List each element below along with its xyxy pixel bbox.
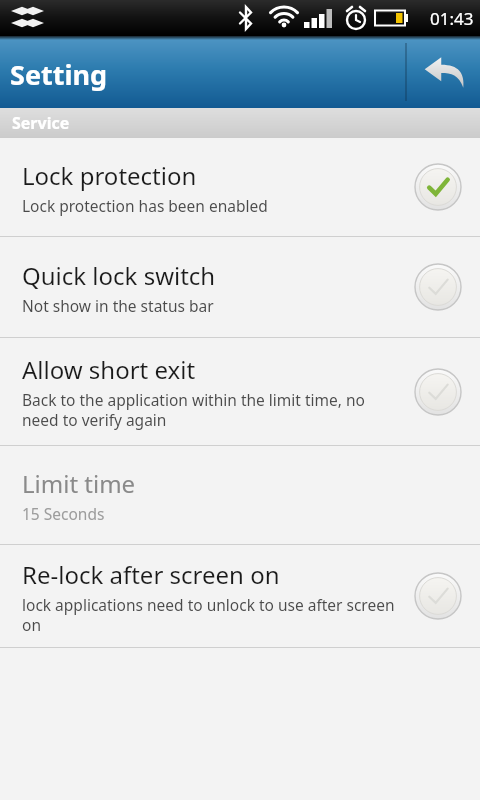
staticText: 15 Seconds	[22, 503, 105, 524]
staticText: Service	[12, 112, 70, 134]
button[interactable]: Back	[407, 36, 480, 108]
staticText: Re-lock after screen on	[22, 558, 280, 591]
button[interactable]: Quick lock switch	[0, 237, 480, 337]
staticText: Limit time	[22, 467, 136, 500]
button[interactable]: Enabled	[415, 164, 461, 210]
button[interactable]: Limit time	[0, 446, 480, 544]
staticText: Quick lock switch	[22, 259, 216, 292]
button[interactable]: Re-lock after screen on	[0, 545, 480, 647]
staticText: Lock protection has been enabled	[22, 195, 268, 216]
staticText: Allow short exit	[22, 353, 196, 386]
button[interactable]: Disabled	[415, 264, 461, 310]
button[interactable]: Disabled	[415, 369, 461, 415]
staticText: Back to the application within the limit…	[22, 389, 400, 430]
button[interactable]: Allow short exit	[0, 338, 480, 445]
staticText: lock applications need to unlock to use …	[22, 594, 400, 635]
staticText: Setting	[10, 56, 108, 93]
staticText: 01:43	[430, 7, 474, 30]
staticText: Not show in the status bar	[22, 295, 214, 316]
staticText: Lock protection	[22, 159, 197, 192]
button[interactable]: Disabled	[415, 573, 461, 619]
button[interactable]: Lock protection	[0, 138, 480, 236]
